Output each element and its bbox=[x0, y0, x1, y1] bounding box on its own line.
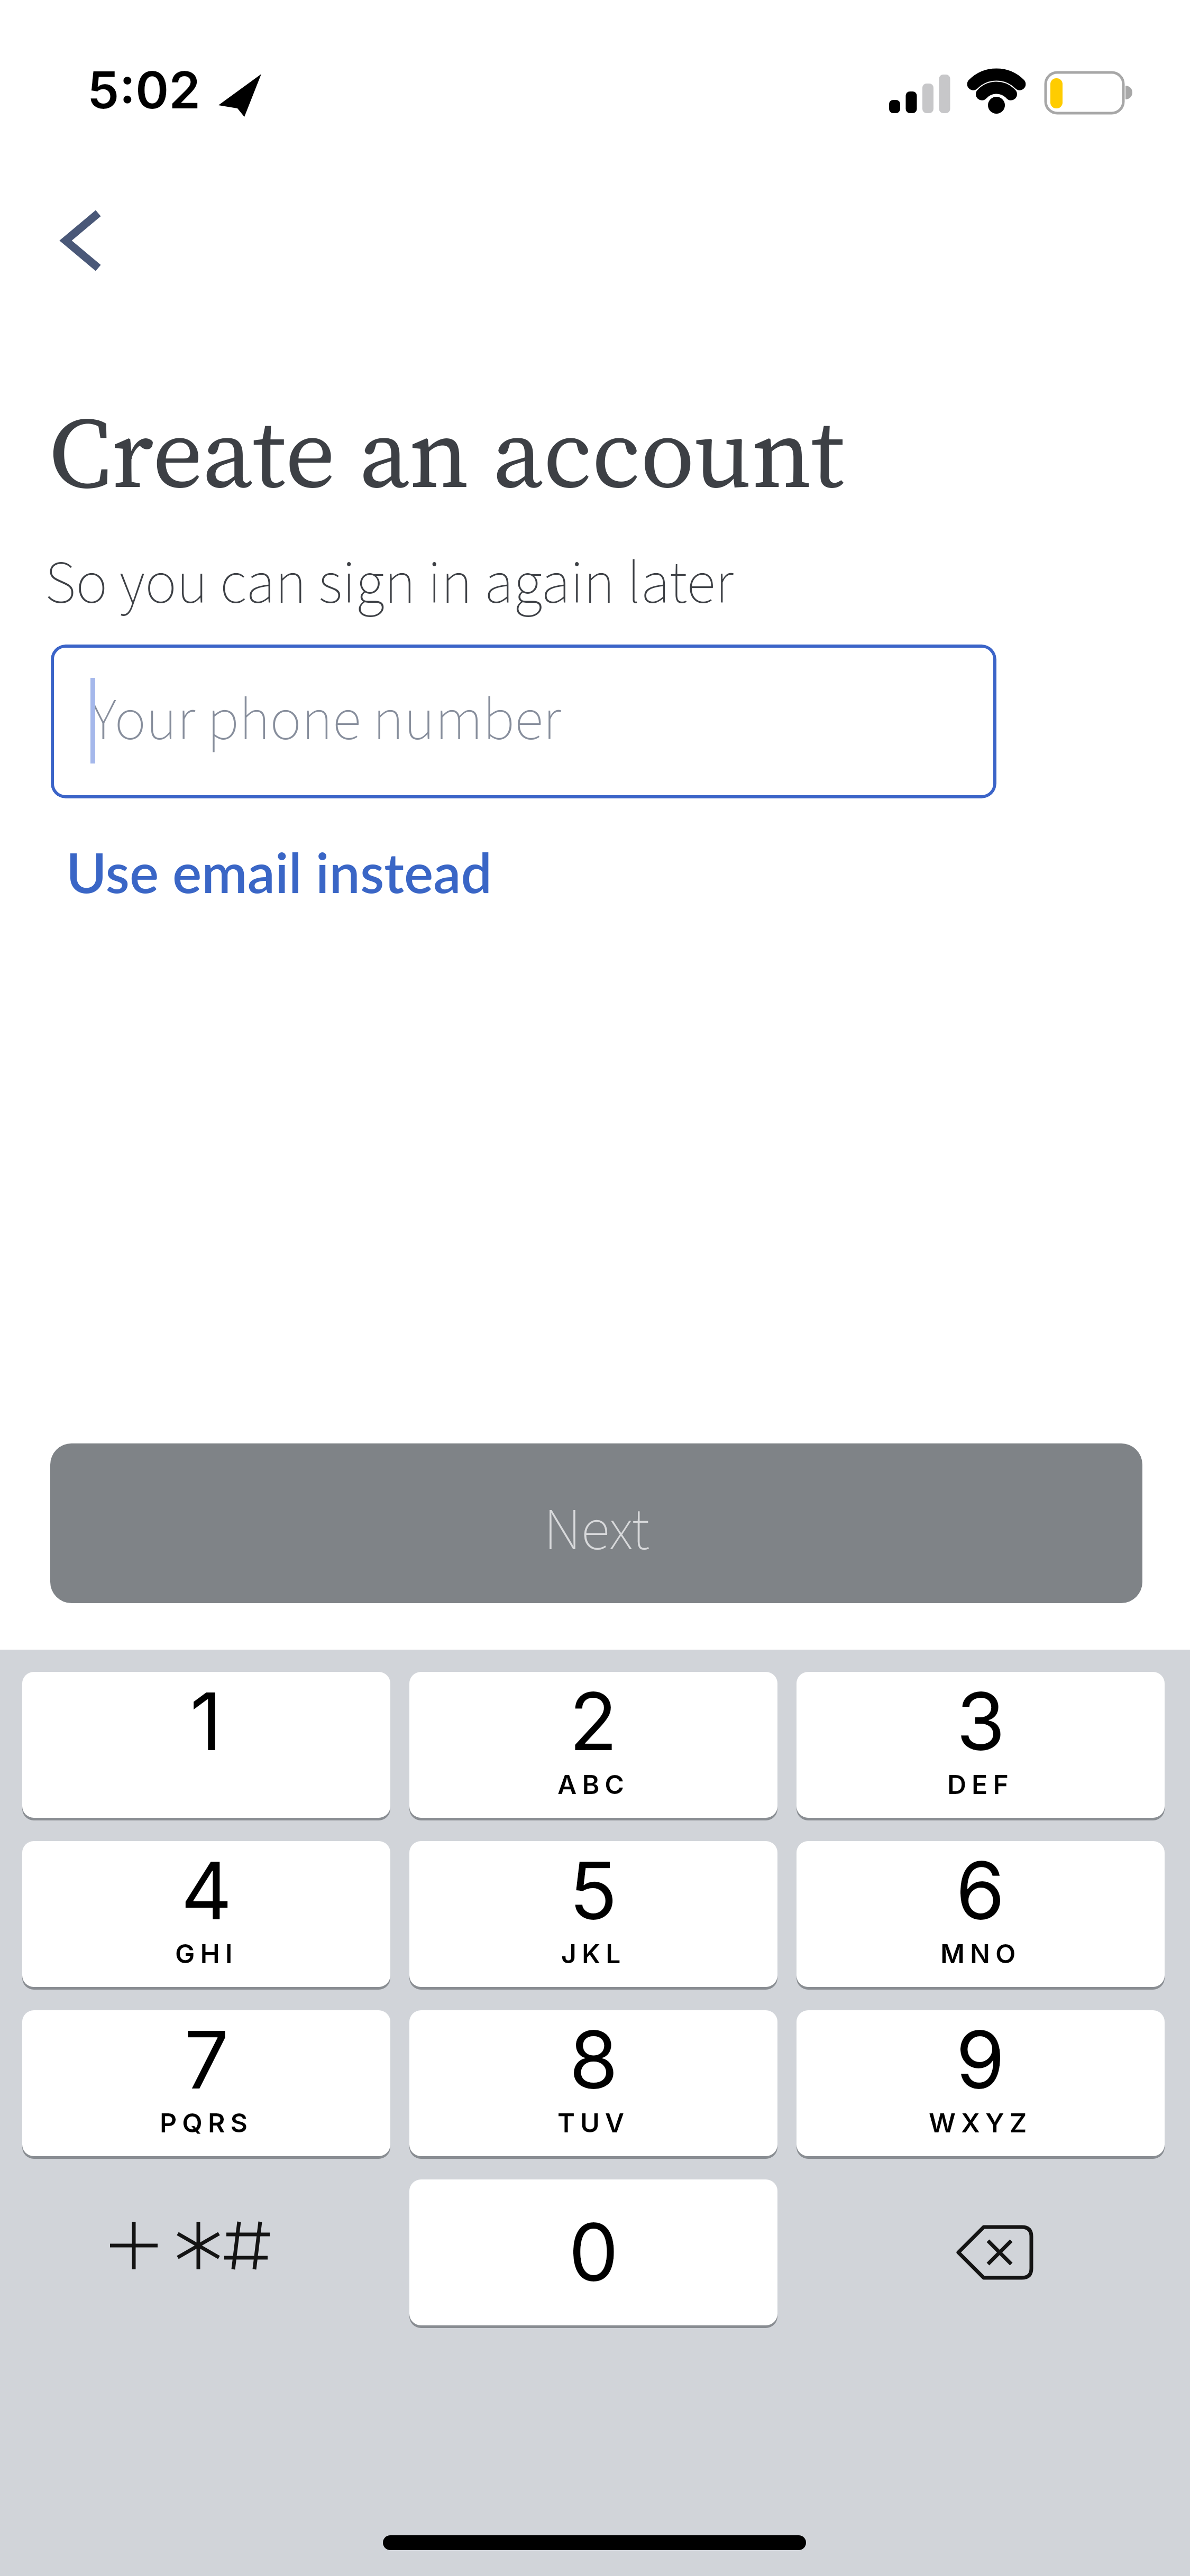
staticText: MNO bbox=[940, 1938, 1021, 1970]
staticText: So you can sign in again later bbox=[45, 541, 734, 627]
button[interactable] bbox=[797, 2179, 1165, 2325]
button[interactable] bbox=[22, 2179, 390, 2325]
button[interactable]: 0 bbox=[409, 2179, 777, 2325]
button[interactable]: 8 bbox=[409, 2010, 777, 2156]
staticText: 5 bbox=[569, 1843, 618, 1938]
staticText: 0 bbox=[569, 2204, 619, 2300]
button[interactable]: 1 bbox=[22, 1672, 390, 1818]
staticText: ABC bbox=[557, 1769, 630, 1800]
button[interactable]: Next bbox=[50, 1443, 1142, 1603]
button[interactable]: 6 bbox=[797, 1841, 1165, 1987]
button[interactable] bbox=[42, 196, 138, 291]
button[interactable]: Your phone number bbox=[51, 645, 996, 798]
staticText: 3 bbox=[956, 1673, 1005, 1769]
button[interactable]: 9 bbox=[797, 2010, 1165, 2156]
staticText: Your phone number bbox=[90, 678, 561, 762]
button[interactable]: 5 bbox=[409, 1841, 777, 1987]
button[interactable]: 2 bbox=[409, 1672, 777, 1818]
button[interactable]: 3 bbox=[797, 1672, 1165, 1818]
button[interactable]: Use email instead bbox=[56, 828, 482, 894]
staticText: Next bbox=[544, 1488, 649, 1572]
staticText: 2 bbox=[569, 1673, 618, 1769]
staticText: PQRS bbox=[160, 2107, 253, 2139]
staticText: 9 bbox=[956, 2012, 1005, 2108]
staticText: 8 bbox=[569, 2012, 618, 2108]
staticText: Use email instead bbox=[66, 839, 492, 905]
staticText: TUV bbox=[557, 2107, 630, 2139]
staticText: WXYZ bbox=[929, 2107, 1032, 2139]
staticText: DEF bbox=[947, 1769, 1014, 1800]
staticText: GHI bbox=[175, 1938, 238, 1970]
button[interactable]: 4 bbox=[22, 1841, 390, 1987]
staticText: 4 bbox=[181, 1843, 232, 1938]
staticText: 7 bbox=[184, 2012, 229, 2108]
staticText: 6 bbox=[956, 1843, 1005, 1938]
staticText: 5:02 bbox=[87, 59, 201, 121]
button[interactable]: 7 bbox=[22, 2010, 390, 2156]
staticText: Create an account bbox=[49, 384, 844, 520]
staticText: 1 bbox=[190, 1673, 223, 1769]
staticText: JKL bbox=[561, 1938, 626, 1970]
